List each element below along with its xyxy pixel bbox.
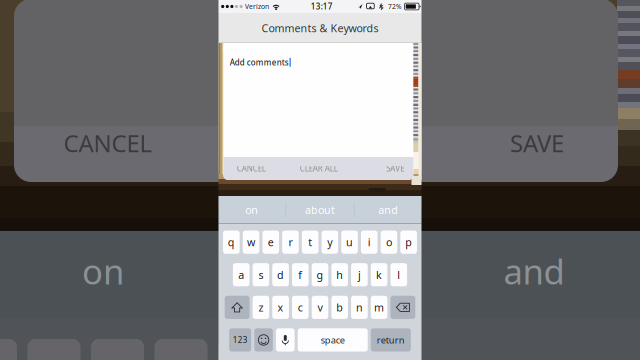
staticText: h [336, 268, 343, 282]
staticText: Add comments [230, 57, 289, 68]
staticText: s [258, 268, 263, 282]
button[interactable]: SAVE [502, 128, 572, 158]
staticText: p [405, 235, 412, 249]
button[interactable]: CANCEL [229, 157, 273, 180]
staticText: and [503, 248, 564, 294]
staticText: k [376, 268, 382, 282]
button[interactable]: y [322, 231, 338, 254]
staticText: a [238, 268, 244, 282]
staticText: y [327, 235, 332, 249]
button[interactable]: u [341, 231, 358, 254]
staticText: Comments & Keywords [261, 21, 378, 35]
button[interactable]: about [286, 196, 354, 223]
staticText: 123 [233, 335, 248, 345]
button[interactable]: CANCEL [53, 128, 163, 158]
staticText: space [321, 334, 345, 346]
staticText: 72% [388, 2, 402, 11]
staticText: t [308, 235, 312, 249]
button[interactable]: x [272, 296, 289, 319]
button[interactable]: d [272, 263, 289, 286]
button[interactable]: v [312, 296, 328, 319]
staticText: i [368, 235, 371, 249]
button[interactable]: q [223, 231, 240, 254]
staticText: m [374, 300, 384, 314]
staticText: about [305, 203, 335, 217]
staticText: SAVE [510, 127, 564, 159]
button[interactable]: t [302, 231, 318, 254]
button[interactable]: 123 [229, 328, 251, 352]
button[interactable]: l [390, 263, 407, 286]
button[interactable]: Dictation [276, 328, 295, 352]
staticText: o [386, 235, 392, 249]
staticText: and [378, 203, 398, 217]
staticText: CANCEL [237, 163, 266, 174]
button[interactable]: h [331, 263, 348, 286]
button[interactable]: CLEAR ALL [294, 157, 344, 180]
staticText: Verizon [245, 2, 269, 11]
button[interactable]: space [298, 328, 368, 352]
button[interactable]: return [371, 328, 411, 352]
staticText: z [258, 300, 263, 314]
button[interactable]: z [253, 296, 269, 319]
staticText: f [298, 268, 302, 282]
staticText: d [277, 268, 284, 282]
staticText: on [82, 248, 124, 294]
staticText: x [278, 300, 284, 314]
button[interactable]: g [312, 263, 328, 286]
staticText: n [356, 300, 363, 314]
staticText: u [346, 235, 353, 249]
button[interactable]: on [218, 196, 286, 223]
staticText: 13:17 [311, 1, 333, 12]
staticText: q [228, 235, 235, 249]
button[interactable]: a [233, 263, 249, 286]
button[interactable]: Delete [390, 296, 415, 319]
staticText: return [377, 334, 405, 346]
button[interactable]: SAVE [380, 157, 410, 180]
button[interactable]: c [292, 296, 309, 319]
button[interactable]: f [292, 263, 309, 286]
button[interactable]: n [351, 296, 368, 319]
staticText: CANCEL [63, 127, 152, 159]
staticText: e [268, 235, 274, 249]
button[interactable]: w [243, 231, 259, 254]
staticText: g [316, 268, 323, 282]
button[interactable]: Shift [225, 296, 249, 319]
button[interactable]: and [354, 196, 422, 223]
button[interactable]: i [361, 231, 378, 254]
staticText: l [397, 268, 400, 282]
button[interactable]: p [400, 231, 417, 254]
button[interactable]: b [331, 296, 348, 319]
staticText: j [358, 268, 361, 282]
staticText: r [288, 235, 292, 249]
staticText: SAVE [386, 163, 404, 174]
staticText: on [245, 203, 258, 217]
button[interactable]: e [262, 231, 279, 254]
button[interactable]: Emoji [254, 328, 273, 352]
staticText: w [247, 235, 255, 249]
button[interactable]: o [381, 231, 397, 254]
staticText: CLEAR ALL [300, 163, 338, 174]
button[interactable]: s [253, 263, 269, 286]
staticText: v [317, 300, 322, 314]
staticText: c [298, 300, 303, 314]
button[interactable]: k [371, 263, 387, 286]
button[interactable]: m [371, 296, 387, 319]
staticText: about [272, 248, 367, 294]
staticText: b [336, 300, 343, 314]
button[interactable]: r [282, 231, 299, 254]
button[interactable]: j [351, 263, 368, 286]
